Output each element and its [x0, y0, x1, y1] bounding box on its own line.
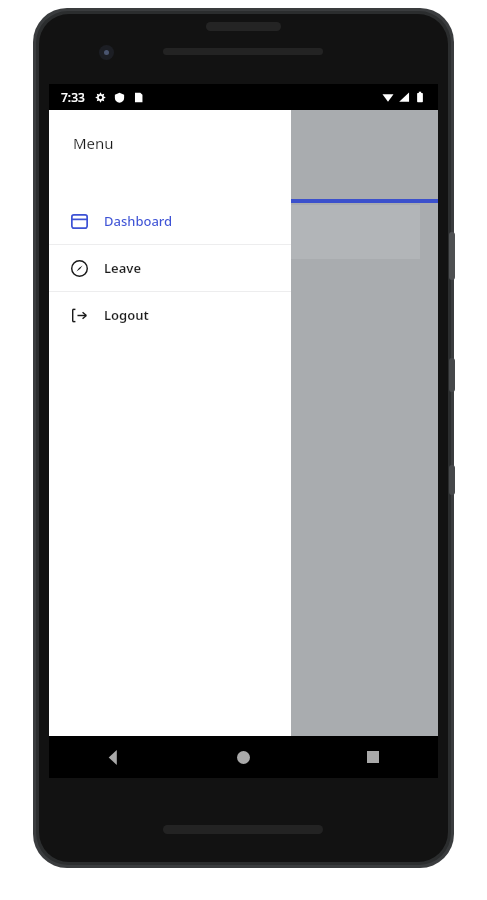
button[interactable]: Dashboard [49, 198, 291, 244]
button[interactable]: Logout [49, 292, 291, 338]
staticText: Menu [73, 133, 114, 153]
button[interactable]: Recent apps [308, 736, 438, 778]
button[interactable]: Home [178, 736, 308, 778]
button[interactable]: Back [49, 736, 178, 778]
staticText: 7:33 [61, 89, 85, 105]
staticText: Leave [104, 259, 142, 277]
button[interactable]: Leave [49, 245, 291, 291]
staticText: Dashboard [104, 212, 173, 230]
staticText: Logout [104, 306, 149, 324]
